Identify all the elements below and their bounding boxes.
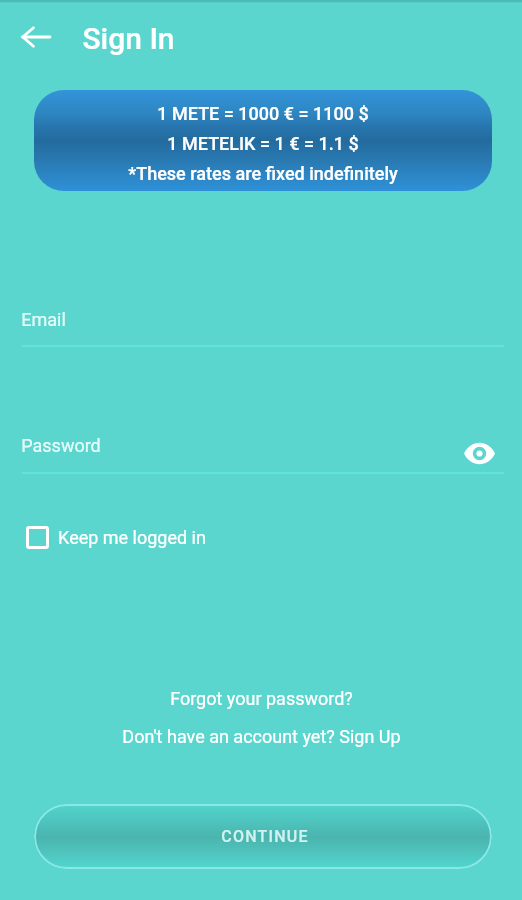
staticText: Sign In	[82, 21, 175, 56]
button[interactable]: CONTINUE	[34, 804, 492, 869]
staticText: Password	[21, 435, 101, 456]
button[interactable]: Keep me logged in	[18, 518, 218, 557]
staticText: Keep me logged in	[58, 527, 206, 548]
staticText: 1 METE = 1000 € = 1100 $	[157, 103, 369, 124]
button[interactable]: Back	[13, 14, 59, 60]
button[interactable]: Forgot your password?	[162, 683, 361, 714]
staticText: Don't have an account yet? Sign Up	[122, 726, 401, 747]
staticText: Email	[21, 309, 66, 330]
staticText: Forgot your password?	[170, 688, 353, 709]
staticText: *These rates are fixed indefinitely	[128, 163, 398, 184]
staticText: 1 METELIK = 1 € = 1.1 $	[167, 133, 359, 154]
staticText: CONTINUE	[221, 827, 309, 846]
button[interactable]: Show password	[455, 429, 503, 477]
button[interactable]: Don't have an account yet? Sign Up	[114, 721, 409, 752]
